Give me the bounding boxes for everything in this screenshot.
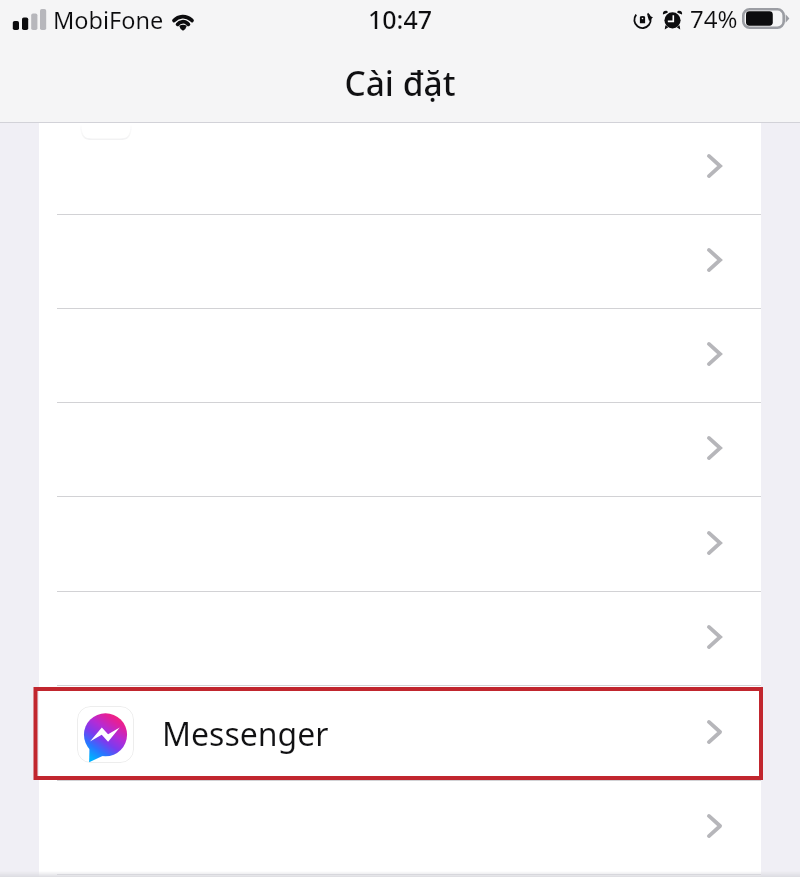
staticText: MobiFone bbox=[53, 4, 164, 36]
other: Open bbox=[707, 342, 722, 366]
other: Open bbox=[707, 814, 722, 838]
staticText: 10:47 bbox=[0, 2, 800, 36]
other: Open bbox=[707, 248, 722, 272]
staticText: Cài đặt bbox=[0, 60, 800, 106]
button[interactable]: Open bbox=[39, 215, 761, 309]
staticText: 74% bbox=[690, 2, 738, 35]
other: Open bbox=[707, 720, 722, 744]
other: Open bbox=[707, 531, 722, 555]
other: Open bbox=[707, 436, 722, 460]
button[interactable]: Open bbox=[39, 592, 761, 686]
button[interactable]: Open bbox=[39, 120, 761, 215]
other: Open bbox=[707, 625, 722, 649]
button[interactable]: Messenger bbox=[39, 687, 761, 781]
other: Open bbox=[707, 154, 722, 178]
staticText: Messenger bbox=[162, 712, 329, 756]
button[interactable]: Open bbox=[39, 403, 761, 497]
button[interactable]: Open bbox=[39, 781, 761, 875]
button[interactable]: Open bbox=[39, 498, 761, 592]
button[interactable]: Open bbox=[39, 309, 761, 403]
